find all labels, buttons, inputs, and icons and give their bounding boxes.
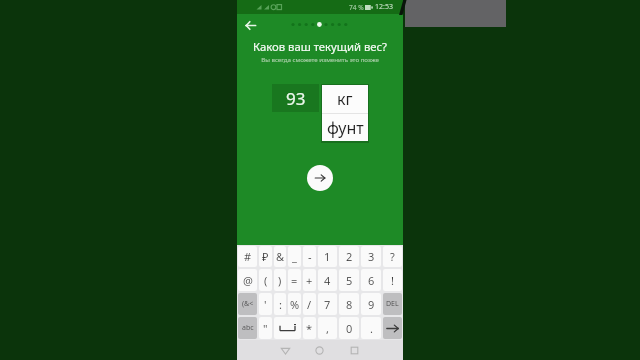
button[interactable]: ? — [383, 246, 402, 267]
button[interactable]: Enter — [383, 317, 402, 339]
button[interactable]: - — [303, 246, 316, 267]
staticText: 74 % — [349, 3, 364, 12]
staticText: 8 — [346, 297, 353, 312]
staticText: * — [306, 321, 313, 336]
button[interactable]: 2 — [339, 246, 359, 267]
button[interactable]: Space — [274, 317, 301, 339]
staticText: 12:53 — [375, 2, 393, 12]
button[interactable]: 7 — [318, 293, 337, 315]
button[interactable]: Recents — [345, 341, 363, 359]
staticText: ! — [391, 273, 394, 288]
button[interactable]: abc — [238, 317, 257, 339]
button[interactable]: 3 — [361, 246, 381, 267]
staticText: 1 — [324, 249, 331, 264]
staticText: - — [308, 249, 312, 264]
staticText: DEL — [386, 299, 399, 309]
button[interactable]: 93 — [272, 84, 319, 112]
button[interactable]: : — [274, 293, 286, 315]
staticText: ₽ — [262, 249, 269, 264]
staticText: 93 — [286, 87, 306, 110]
button[interactable]: 5 — [339, 269, 359, 291]
staticText: : — [279, 297, 282, 312]
button[interactable]: ₽ — [259, 246, 272, 267]
button[interactable]: , — [318, 317, 337, 339]
button[interactable]: 1 — [318, 246, 337, 267]
staticText: , — [326, 321, 329, 336]
button[interactable]: 0 — [339, 317, 359, 339]
staticText: ( — [264, 273, 268, 288]
button[interactable]: . — [361, 317, 381, 339]
button[interactable]: 6 — [361, 269, 381, 291]
button[interactable]: Home — [310, 341, 328, 359]
staticText: _ — [292, 249, 297, 264]
staticText: @ — [243, 273, 253, 288]
button[interactable]: = — [288, 269, 301, 291]
staticText: 7 — [324, 297, 331, 312]
button[interactable]: + — [303, 269, 316, 291]
button[interactable]: Back — [242, 17, 259, 34]
staticText: 6 — [368, 273, 375, 288]
staticText: # — [244, 249, 252, 264]
button[interactable]: Next — [307, 165, 333, 191]
staticText: / — [307, 297, 312, 312]
staticText: 9 — [368, 297, 375, 312]
staticText: 4 — [324, 273, 331, 288]
button[interactable]: / — [303, 293, 316, 315]
button[interactable]: Back — [276, 341, 294, 359]
staticText: кг — [337, 88, 353, 110]
staticText: 0 — [346, 321, 353, 336]
button[interactable]: % — [288, 293, 301, 315]
staticText: ) — [278, 273, 282, 288]
staticText: % — [290, 297, 300, 312]
staticText: фунт — [327, 117, 364, 139]
button[interactable]: 8 — [339, 293, 359, 315]
staticText: Вы всегда сможете изменить это позже — [237, 55, 403, 63]
staticText: (&< — [242, 299, 254, 309]
staticText: Каков ваш текущий вес? — [237, 39, 403, 54]
button[interactable]: * — [303, 317, 316, 339]
staticText: abc — [242, 323, 254, 333]
button[interactable]: _ — [288, 246, 301, 267]
button[interactable]: кг — [322, 85, 368, 113]
staticText: = — [291, 273, 298, 288]
button[interactable]: 9 — [361, 293, 381, 315]
button[interactable]: # — [238, 246, 257, 267]
staticText: . — [370, 321, 373, 336]
button[interactable]: & — [274, 246, 286, 267]
button[interactable]: фунт — [322, 114, 368, 141]
button[interactable]: DEL — [383, 293, 402, 315]
button[interactable]: ! — [383, 269, 402, 291]
staticText: ? — [390, 249, 395, 264]
staticText: " — [263, 321, 268, 336]
button[interactable]: ( — [259, 269, 272, 291]
button[interactable]: ) — [274, 269, 286, 291]
staticText: ' — [264, 297, 267, 312]
staticText: 2 — [346, 249, 353, 264]
button[interactable]: @ — [238, 269, 257, 291]
staticText: + — [306, 273, 313, 288]
button[interactable]: " — [259, 317, 272, 339]
staticText: & — [276, 249, 285, 264]
staticText: 5 — [346, 273, 353, 288]
button[interactable]: (&< — [238, 293, 257, 315]
button[interactable]: 4 — [318, 269, 337, 291]
button[interactable]: ' — [259, 293, 272, 315]
staticText: 3 — [368, 249, 375, 264]
